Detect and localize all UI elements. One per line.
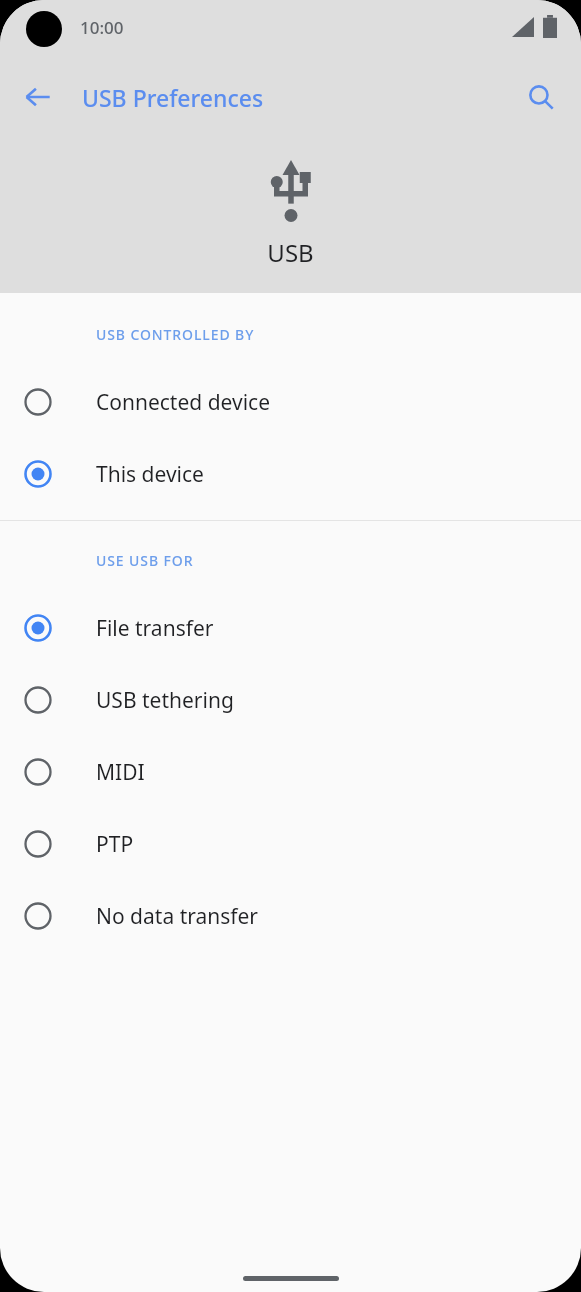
staticText: No data transfer: [96, 902, 259, 931]
button[interactable]: Search: [515, 71, 567, 123]
staticText: USB: [267, 236, 314, 269]
staticText: USB Preferences: [82, 82, 264, 113]
staticText: USB tethering: [96, 686, 234, 715]
staticText: USE USB FOR: [96, 551, 194, 570]
staticText: PTP: [96, 830, 134, 859]
staticText: File transfer: [96, 614, 214, 643]
button[interactable]: PTP: [0, 808, 581, 880]
staticText: USB CONTROLLED BY: [96, 325, 255, 344]
button[interactable]: USB tethering: [0, 664, 581, 736]
button[interactable]: This device: [0, 438, 581, 510]
button[interactable]: No data transfer: [0, 880, 581, 952]
staticText: This device: [96, 460, 204, 489]
staticText: MIDI: [96, 758, 145, 787]
staticText: Connected device: [96, 388, 271, 417]
button[interactable]: Back: [12, 71, 64, 123]
staticText: 10:00: [80, 16, 124, 39]
button[interactable]: MIDI: [0, 736, 581, 808]
button[interactable]: File transfer: [0, 592, 581, 664]
button[interactable]: Connected device: [0, 366, 581, 438]
